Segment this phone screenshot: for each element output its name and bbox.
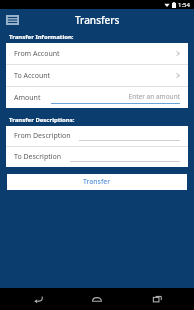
staticText: From Account: [14, 49, 176, 59]
button[interactable]: Recent apps: [135, 288, 179, 310]
staticText: Transfers: [75, 13, 120, 27]
button[interactable]: Amount: [6, 87, 188, 108]
button[interactable]: Back: [16, 288, 60, 310]
staticText: To Account: [14, 71, 176, 81]
button[interactable]: To Description: [6, 147, 188, 167]
button[interactable]: From Account: [6, 43, 188, 64]
staticText: Enter an amount: [51, 92, 180, 101]
button[interactable]: Transfer: [7, 174, 187, 190]
staticText: Transfer: [83, 177, 111, 187]
button[interactable]: Open navigation menu: [6, 15, 19, 25]
staticText: To Description: [14, 152, 62, 162]
staticText: 1:54: [178, 1, 190, 9]
staticText: Transfer Descriptions:: [9, 116, 75, 124]
staticText: Amount: [14, 93, 41, 103]
button[interactable]: To Account: [6, 65, 188, 86]
staticText: Transfer Information:: [9, 33, 74, 41]
staticText: From Description: [14, 131, 71, 141]
button[interactable]: Home: [75, 288, 119, 310]
button[interactable]: From Description: [6, 126, 188, 146]
